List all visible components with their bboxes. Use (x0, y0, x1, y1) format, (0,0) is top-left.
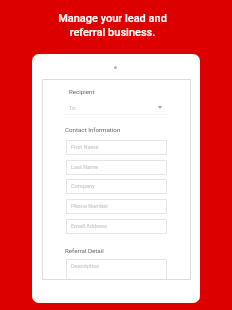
button[interactable]: Phone Number (66, 199, 167, 214)
button[interactable]: Email Address (66, 219, 167, 234)
staticText: Last Name (71, 164, 99, 171)
staticText: Referral Detail (65, 247, 104, 254)
button[interactable]: First Name (66, 140, 167, 155)
staticText: Phone Number (71, 203, 109, 210)
staticText: Manage your lead and referral business. (58, 12, 167, 39)
staticText: Recipient (69, 88, 95, 95)
staticText: To: (69, 105, 77, 112)
staticText: Email Address (71, 223, 107, 230)
staticText: Contact Information (65, 126, 121, 133)
staticText: Company (71, 183, 95, 190)
button[interactable]: Description (66, 259, 167, 280)
button[interactable]: Company (66, 179, 167, 194)
other: Choose recipient (158, 106, 162, 109)
button[interactable]: To: (64, 102, 168, 115)
button[interactable]: Last Name (66, 160, 167, 175)
staticText: Description (71, 263, 100, 270)
staticText: First Name (71, 144, 99, 151)
